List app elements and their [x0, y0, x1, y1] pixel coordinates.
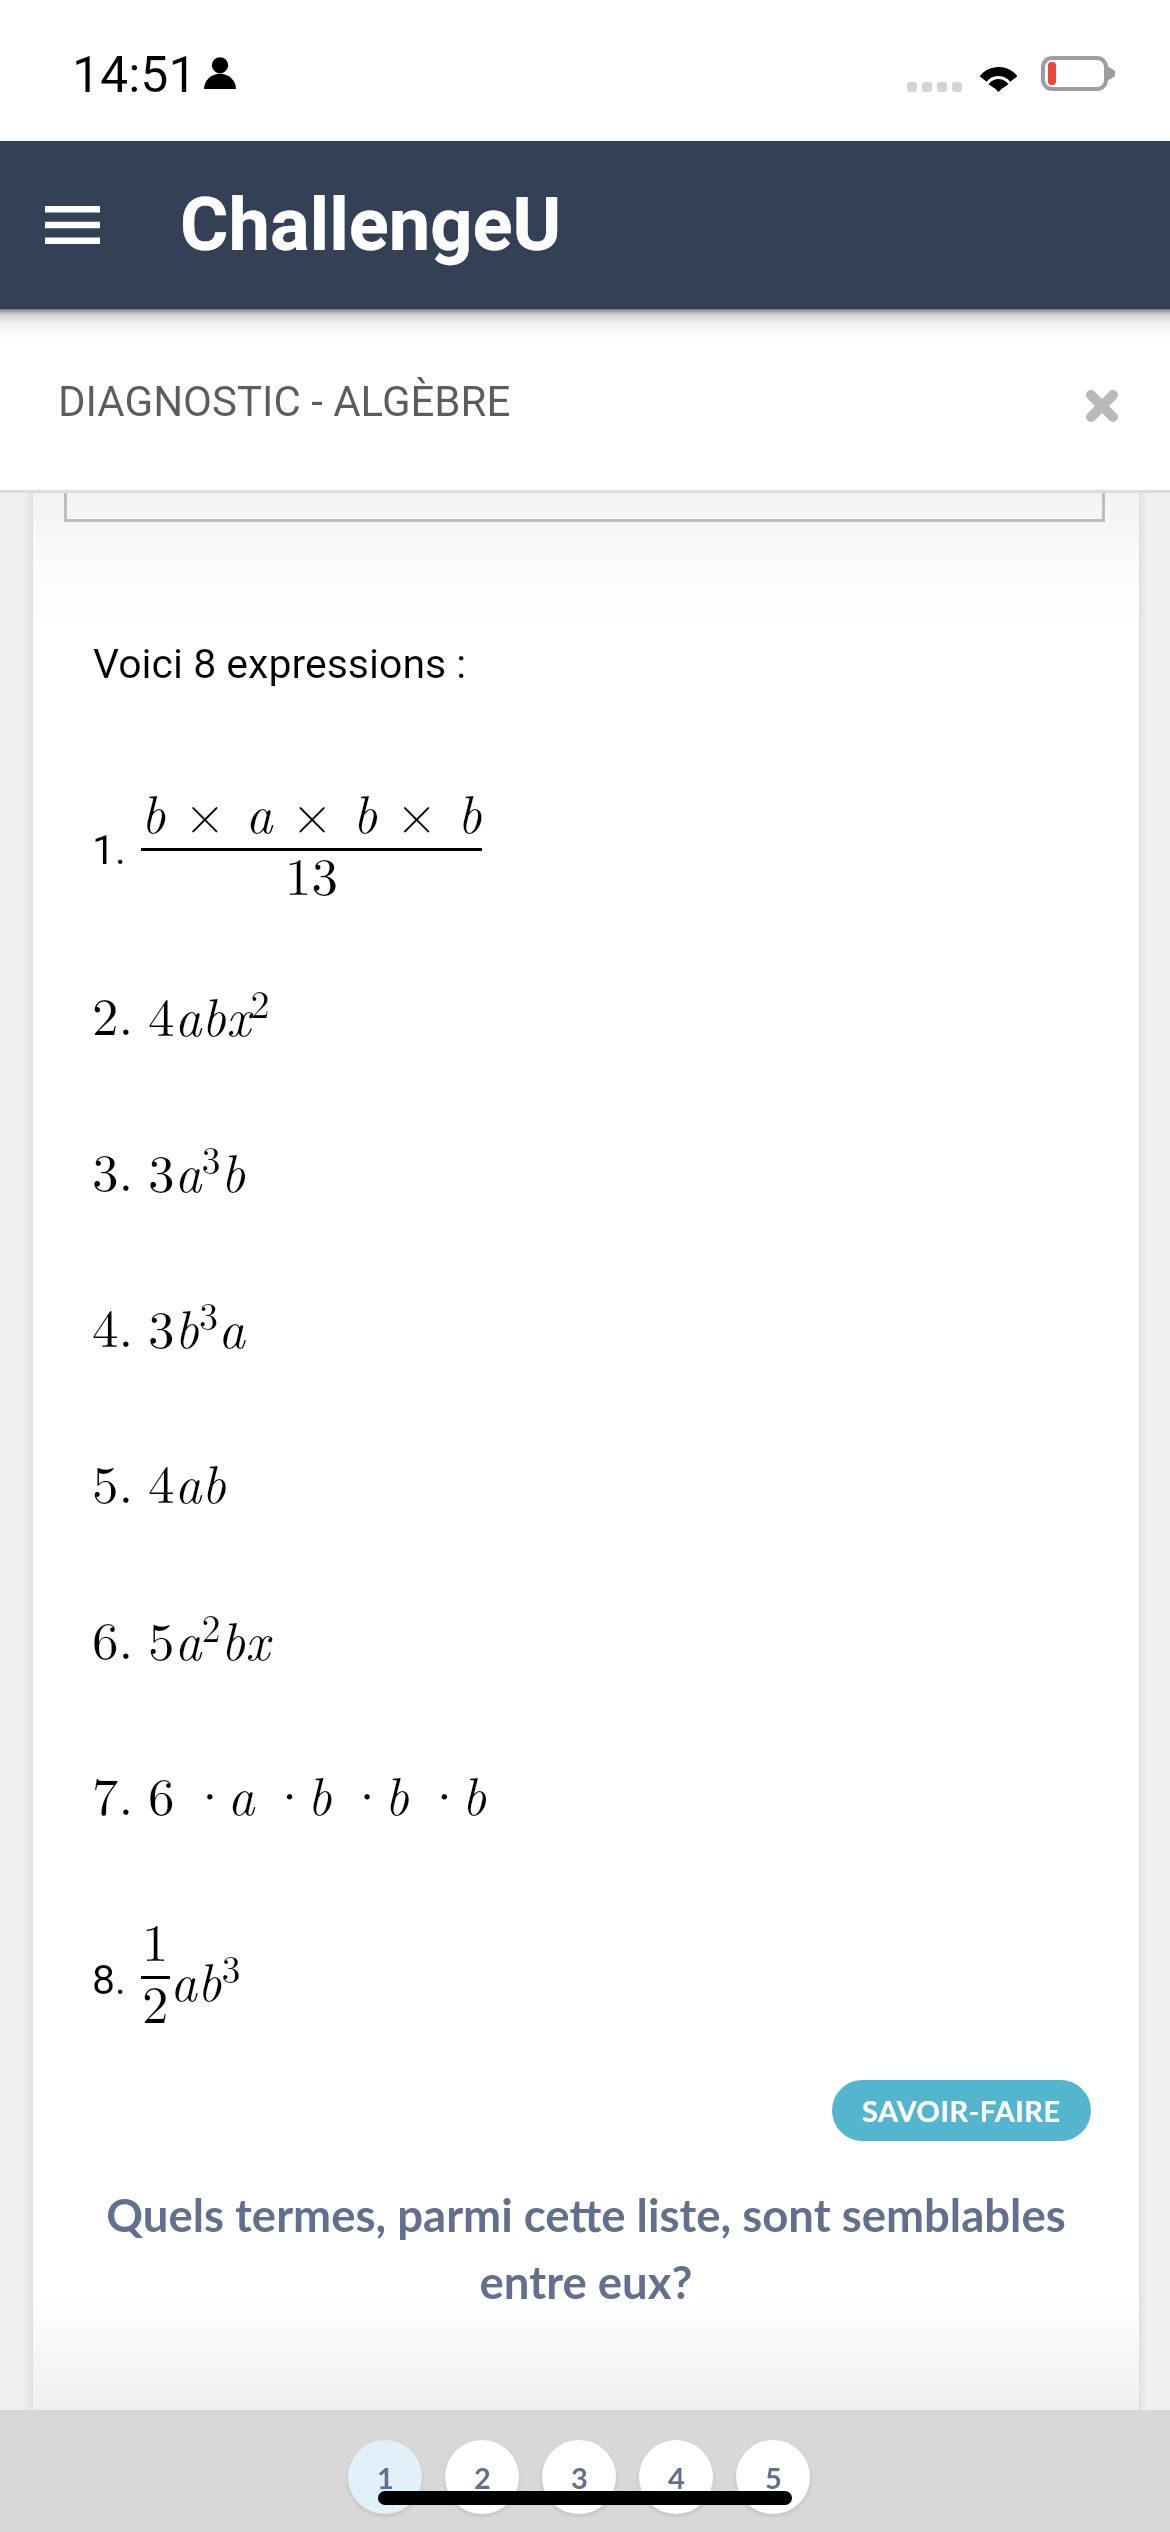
staticText: 8.	[92, 1956, 126, 2004]
staticText: 4	[668, 2460, 685, 2495]
staticText: Voici 8 expressions :	[93, 640, 467, 688]
staticText: 13	[285, 835, 338, 910]
staticText: 5	[765, 2460, 782, 2495]
staticText: 3.	[92, 1131, 134, 1206]
staticText: 7.	[92, 1755, 134, 1830]
staticText: 2.	[92, 975, 134, 1050]
staticText: 4ab	[148, 1443, 226, 1518]
button[interactable]: 1	[344, 2436, 426, 2518]
staticText: 3	[571, 2460, 588, 2495]
staticText: ChallengeU	[180, 181, 562, 268]
staticText: 3b3a	[148, 1287, 246, 1363]
button[interactable]: Open navigation menu	[18, 170, 126, 280]
button[interactable]: SAVOIR-FAIRE	[832, 2080, 1091, 2141]
button[interactable]: 5	[732, 2436, 814, 2518]
staticText: 14:51	[72, 46, 197, 105]
staticText: 1.	[92, 826, 126, 874]
button[interactable]: Close	[1060, 364, 1144, 448]
staticText: 6 ·a ·b ·b ·b	[148, 1755, 487, 1830]
staticText: 3a3b	[148, 1131, 246, 1207]
staticText: 5.	[92, 1443, 134, 1518]
staticText: 6.	[92, 1599, 134, 1674]
staticText: Quels termes, parmi cette liste, sont se…	[95, 2187, 1077, 2309]
staticText: 5a2bx	[148, 1599, 270, 1675]
staticText: 2	[142, 1963, 169, 2038]
staticText: DIAGNOSTIC - ALGÈBRE	[58, 377, 511, 426]
staticText: 1	[377, 2460, 394, 2495]
button[interactable]: 2	[441, 2436, 523, 2518]
staticText: b × a × b × b	[141, 773, 482, 848]
button[interactable]: 4	[635, 2436, 717, 2518]
staticText: 4.	[92, 1287, 134, 1362]
staticText: 1	[142, 1901, 169, 1976]
button[interactable]: 3	[538, 2436, 620, 2518]
staticText: ab3	[170, 1940, 241, 2016]
staticText: 4abx2	[148, 975, 270, 1051]
staticText: 2	[474, 2460, 491, 2495]
staticText: SAVOIR-FAIRE	[862, 2093, 1061, 2128]
